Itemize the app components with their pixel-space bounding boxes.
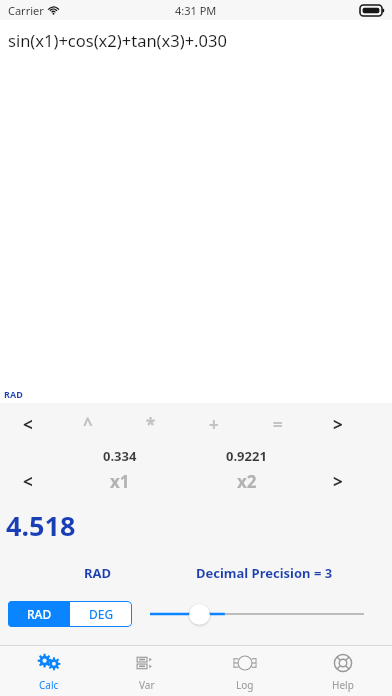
staticText: > [333, 470, 343, 493]
staticText: Help [332, 678, 354, 692]
staticText: Calc [39, 678, 59, 692]
button[interactable]: Next operator [310, 410, 366, 438]
staticText: 0.334 [103, 447, 137, 465]
button[interactable]: DEG [70, 601, 132, 627]
staticText: RAD [84, 564, 112, 582]
button[interactable]: Previous variable [0, 468, 56, 494]
staticText: + [209, 413, 219, 436]
button[interactable]: Var [98, 646, 196, 696]
staticText: * [146, 413, 156, 436]
staticText: < [23, 470, 33, 493]
button[interactable]: sin(x1)+cos(x2)+tan(x3)+.030 [0, 20, 392, 57]
staticText: RAD [4, 388, 23, 400]
button[interactable]: x1 [56, 468, 183, 494]
staticText: ^ [83, 413, 93, 436]
button[interactable]: Log [196, 646, 294, 696]
button[interactable]: Calc [0, 646, 98, 696]
button[interactable]: + [182, 410, 246, 438]
staticText: > [333, 413, 343, 436]
button[interactable]: Decimal Precision = 3 [196, 564, 333, 582]
staticText: 0.9221 [226, 447, 267, 465]
staticText: = [273, 413, 283, 436]
button[interactable]: ^ [56, 410, 119, 438]
staticText: sin(x1)+cos(x2)+tan(x3)+.030 [8, 29, 227, 51]
button[interactable]: 4.518 [0, 507, 392, 544]
staticText: Log [236, 678, 254, 692]
staticText: Decimal Precision = 3 [196, 564, 333, 582]
staticText: x2 [237, 470, 257, 493]
staticText: 4.518 [6, 507, 76, 544]
button[interactable]: * [119, 410, 182, 438]
button[interactable]: Decimal precision slider [150, 600, 364, 628]
button[interactable]: RAD [8, 601, 70, 627]
staticText: Var [139, 678, 155, 692]
staticText: < [23, 413, 33, 436]
staticText: 4:31 PM [175, 3, 217, 18]
staticText: x1 [110, 470, 130, 493]
staticText: DEG [89, 606, 114, 622]
button[interactable]: RAD [84, 564, 112, 582]
staticText: RAD [27, 606, 52, 622]
button[interactable]: x2 [183, 468, 310, 494]
staticText: Carrier [8, 3, 44, 18]
button[interactable]: Help [294, 646, 392, 696]
button[interactable]: Next variable [310, 468, 366, 494]
button[interactable]: = [246, 410, 310, 438]
button[interactable]: Previous operator [0, 410, 56, 438]
